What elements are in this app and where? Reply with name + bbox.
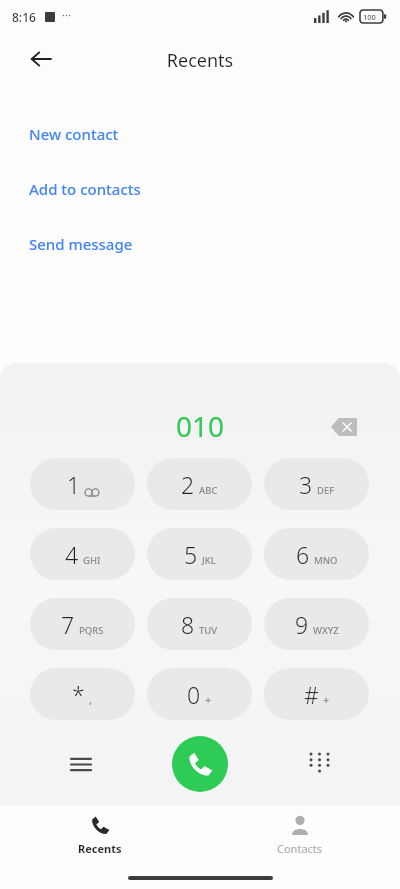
staticText: Send message <box>29 234 133 254</box>
staticText: 8 <box>181 609 195 640</box>
staticText: 4 <box>65 539 79 570</box>
staticText: 6 <box>296 539 310 570</box>
button[interactable]: Call <box>172 736 228 792</box>
staticText: DEF <box>317 484 335 497</box>
staticText: 7 <box>61 609 75 640</box>
button[interactable]: # <box>264 668 369 720</box>
staticText: PQRS <box>79 624 104 637</box>
staticText: Contacts <box>277 841 323 856</box>
staticText: + <box>323 692 330 707</box>
staticText: 0 <box>187 679 201 710</box>
staticText: TUV <box>199 624 218 637</box>
button[interactable]: * <box>30 668 135 720</box>
button[interactable]: 7 <box>30 598 135 650</box>
staticText: ··· <box>62 7 71 22</box>
button[interactable]: 0 <box>147 668 252 720</box>
button[interactable]: 8 <box>147 598 252 650</box>
staticText: ABC <box>199 484 218 497</box>
button[interactable]: Add to contacts <box>0 161 400 216</box>
staticText: WXYZ <box>313 624 339 637</box>
staticText: MNO <box>314 554 338 567</box>
staticText: GHI <box>83 554 101 567</box>
button[interactable]: Send message <box>0 216 400 271</box>
button[interactable]: Call log options <box>55 738 107 790</box>
button[interactable]: Back <box>18 36 64 82</box>
staticText: 9 <box>295 609 309 640</box>
button[interactable]: 3 <box>264 458 369 510</box>
staticText: 2 <box>181 469 195 500</box>
staticText: + <box>205 692 212 707</box>
button[interactable]: 6 <box>264 528 369 580</box>
staticText: Recents <box>78 841 122 856</box>
button[interactable]: Recents <box>0 806 200 868</box>
button[interactable]: 4 <box>30 528 135 580</box>
staticText: 8:16 <box>12 9 36 25</box>
staticText: 3 <box>299 469 313 500</box>
staticText: # <box>304 679 319 710</box>
staticText: , <box>89 692 93 707</box>
button[interactable]: 1 <box>30 458 135 510</box>
staticText: 010 <box>0 407 400 445</box>
staticText: 1 <box>67 469 81 500</box>
staticText: Add to contacts <box>29 179 141 199</box>
staticText: Recents <box>0 48 400 73</box>
button[interactable]: Backspace <box>322 409 366 445</box>
staticText: * <box>72 679 85 710</box>
staticText: JKL <box>202 554 216 567</box>
staticText: New contact <box>29 124 119 144</box>
staticText: 100 <box>363 12 376 22</box>
staticText: 5 <box>184 539 198 570</box>
button[interactable]: 9 <box>264 598 369 650</box>
button[interactable]: Dialpad <box>293 738 345 790</box>
button[interactable]: 2 <box>147 458 252 510</box>
button[interactable]: 5 <box>147 528 252 580</box>
button[interactable]: Contacts <box>200 806 400 868</box>
button[interactable]: New contact <box>0 106 400 161</box>
